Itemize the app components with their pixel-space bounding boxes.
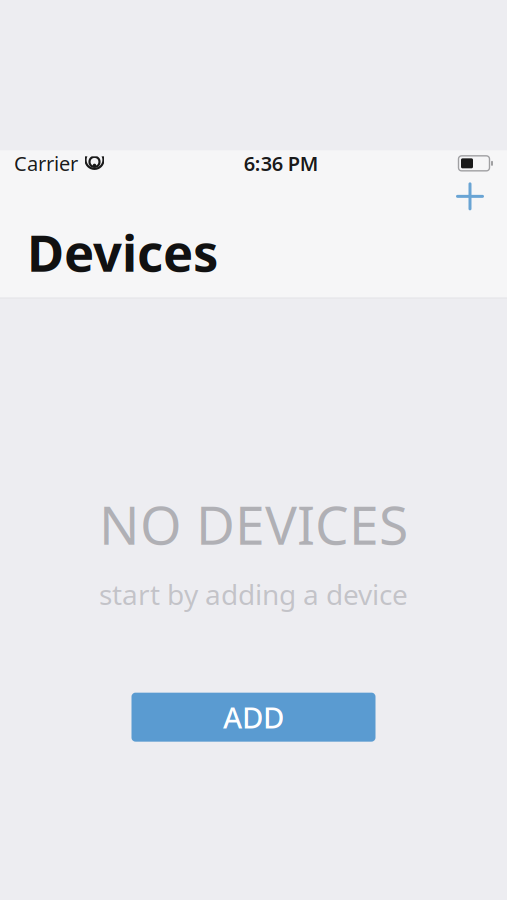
staticText: start by adding a device bbox=[99, 575, 408, 613]
staticText: 6:36 PM bbox=[244, 150, 319, 177]
button[interactable]: ADD bbox=[131, 693, 375, 742]
staticText: Carrier bbox=[14, 150, 78, 177]
button[interactable]: Add device bbox=[447, 176, 493, 216]
staticText: Devices bbox=[27, 218, 218, 286]
staticText: NO DEVICES bbox=[99, 489, 408, 559]
staticText: ADD bbox=[223, 698, 284, 737]
